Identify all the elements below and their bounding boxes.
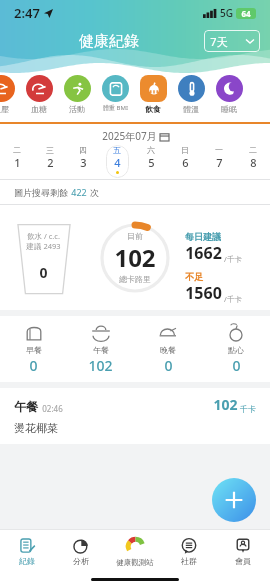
staticText: 活動 (69, 104, 85, 114)
button[interactable]: 社群 (162, 530, 216, 574)
staticText: 睡眠 (221, 104, 237, 114)
button[interactable]: Add record (212, 478, 256, 522)
staticText: 4 (114, 155, 121, 170)
button[interactable]: 飲食 (134, 74, 172, 122)
staticText: 422 (71, 186, 87, 198)
staticText: 5G (220, 6, 233, 20)
staticText: 一 (215, 145, 223, 155)
button[interactable]: 睡眠 (210, 74, 248, 122)
staticText: 3 (80, 155, 87, 170)
staticText: 健康紀錄 (79, 32, 139, 51)
button[interactable]: 五 (100, 145, 134, 179)
button[interactable]: 一 (202, 145, 236, 179)
staticText: 體溫 (183, 104, 199, 114)
staticText: 0 (164, 356, 173, 375)
button[interactable]: 飲水 / c.c. (0, 205, 87, 310)
staticText: 7天 (210, 34, 228, 49)
staticText: 分析 (73, 556, 89, 566)
button[interactable]: 日 (168, 145, 202, 179)
button[interactable]: 會員 (216, 530, 270, 574)
staticText: 二 (13, 145, 21, 155)
staticText: /千卡 (224, 294, 242, 304)
button[interactable]: 六 (134, 145, 168, 179)
staticText: 0 (29, 356, 38, 375)
button[interactable]: 二 (0, 145, 33, 179)
staticText: 0 (39, 263, 48, 282)
staticText: 六 (147, 145, 155, 155)
staticText: 午餐 (14, 399, 38, 414)
staticText: 飲食 (145, 104, 161, 114)
button[interactable]: 午餐 (67, 323, 134, 375)
staticText: 晚餐 (160, 345, 176, 355)
button[interactable]: 體重 BMI (96, 74, 134, 122)
staticText: 千卡 (240, 404, 256, 414)
staticText: 四 (79, 145, 87, 155)
staticText: 血糖 (31, 104, 47, 114)
button[interactable]: 四 (66, 145, 100, 179)
button[interactable]: 分析 (54, 530, 108, 574)
button[interactable]: 晚餐 (134, 323, 202, 375)
staticText: 血壓 (0, 104, 9, 114)
staticText: 102 (88, 356, 113, 375)
staticText: /千卡 (224, 254, 242, 264)
button[interactable]: 體溫 (172, 74, 210, 122)
staticText: 1662 (185, 242, 222, 264)
staticText: 五 (113, 145, 121, 155)
button[interactable]: 血糖 (20, 74, 58, 122)
staticText: 社群 (181, 556, 197, 566)
button[interactable]: 血壓 (0, 74, 20, 122)
staticText: 7 (216, 155, 223, 170)
staticText: 2025年07月 (102, 129, 157, 143)
staticText: 日 (181, 145, 189, 155)
staticText: 燙花椰菜 (14, 421, 58, 435)
staticText: 8 (250, 155, 257, 170)
button[interactable]: 7天 (204, 30, 260, 52)
staticText: 0 (232, 356, 241, 375)
staticText: 點心 (228, 345, 244, 355)
staticText: 不足 (185, 271, 203, 282)
staticText: 02:46 (42, 403, 63, 414)
staticText: 1 (14, 155, 21, 170)
button[interactable]: 活動 (58, 74, 96, 122)
button[interactable]: 二 (236, 145, 270, 179)
staticText: 總卡路里 (119, 274, 151, 284)
staticText: 5 (148, 155, 155, 170)
button[interactable]: 早餐 (0, 323, 67, 375)
staticText: 每日建議 (185, 231, 221, 242)
button[interactable]: 紀錄 (0, 530, 54, 574)
button[interactable]: 三 (33, 145, 66, 179)
staticText: 圖片搜尋剩餘 (14, 187, 68, 198)
staticText: 64 (241, 8, 251, 19)
staticText: 紀錄 (19, 556, 35, 566)
staticText: 102 (213, 395, 238, 414)
staticText: 會員 (235, 556, 251, 566)
staticText: 三 (46, 145, 54, 155)
button[interactable]: 午餐 (14, 395, 256, 414)
staticText: 1560 (185, 282, 222, 304)
button[interactable]: 目前 (87, 205, 183, 310)
staticText: 午餐 (93, 345, 109, 355)
staticText: 體重 BMI (103, 104, 128, 112)
button[interactable]: 點心 (202, 323, 270, 375)
staticText: 102 (114, 241, 156, 274)
staticText: 飲水 / c.c. (27, 231, 60, 241)
staticText: 早餐 (26, 345, 42, 355)
staticText: 次 (90, 187, 99, 198)
staticText: 2:47 (14, 4, 40, 22)
staticText: 建議 2493 (26, 241, 61, 251)
staticText: 二 (249, 145, 257, 155)
staticText: 2 (47, 155, 54, 170)
button[interactable]: 健康觀測站 (108, 530, 162, 574)
staticText: 目前 (127, 231, 143, 241)
staticText: 6 (182, 155, 189, 170)
staticText: 健康觀測站 (116, 558, 154, 567)
button[interactable] (160, 132, 169, 141)
